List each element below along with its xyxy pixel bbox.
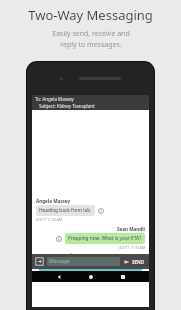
button[interactable]: SEND bbox=[123, 259, 146, 265]
button[interactable]: Message info bbox=[98, 208, 104, 214]
button[interactable]: Recent apps bbox=[117, 271, 128, 282]
staticText: Angela Massey bbox=[36, 198, 71, 204]
button[interactable]: Message bbox=[47, 257, 120, 266]
staticText: 4/3/17 11:32 AM bbox=[36, 217, 62, 222]
staticText: Message bbox=[49, 258, 70, 265]
staticText: Prepping now. What is your ETA? bbox=[68, 235, 142, 242]
staticText: Two-Way Messaging bbox=[28, 6, 153, 24]
staticText: Subject: Kidney Transplant bbox=[39, 103, 95, 109]
button[interactable]: Sean Mandli bbox=[36, 226, 145, 250]
staticText: SEND bbox=[132, 259, 145, 265]
button[interactable]: Attach bbox=[35, 257, 44, 266]
staticText: reply to messages. bbox=[60, 40, 122, 50]
staticText: Heading back from lab. bbox=[39, 207, 92, 214]
button[interactable]: Angela Massey bbox=[36, 198, 145, 222]
staticText: Sean Mandli bbox=[117, 226, 145, 232]
button[interactable]: To: Angela Massey bbox=[32, 95, 149, 110]
staticText: Easily send, receive and bbox=[52, 29, 130, 39]
button[interactable]: Home bbox=[85, 271, 96, 282]
staticText: To: Angela Massey bbox=[35, 96, 74, 102]
button[interactable]: Back bbox=[53, 271, 64, 282]
staticText: 4/3/17 11:33 AM bbox=[119, 245, 145, 250]
button[interactable]: Message info bbox=[56, 236, 62, 242]
